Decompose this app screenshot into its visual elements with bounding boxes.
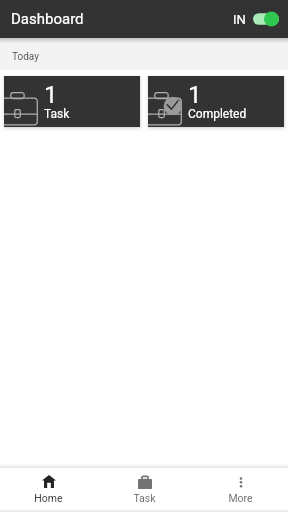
staticText: Task bbox=[44, 107, 70, 121]
button[interactable]: 1 bbox=[4, 76, 140, 127]
button[interactable]: More bbox=[192, 468, 288, 510]
staticText: Completed bbox=[188, 107, 247, 121]
button[interactable]: Home bbox=[0, 468, 96, 510]
staticText: 1 bbox=[44, 81, 58, 109]
button[interactable]: Clock in toggle bbox=[253, 11, 279, 27]
staticText: Task bbox=[133, 492, 156, 504]
button[interactable]: 1 bbox=[148, 76, 284, 127]
staticText: Home bbox=[34, 492, 63, 504]
staticText: Dashboard bbox=[11, 10, 84, 28]
staticText: 1 bbox=[188, 81, 202, 109]
staticText: More bbox=[228, 492, 253, 504]
staticText: Today bbox=[12, 51, 39, 63]
button[interactable]: Task bbox=[96, 468, 192, 510]
staticText: IN bbox=[233, 12, 246, 27]
